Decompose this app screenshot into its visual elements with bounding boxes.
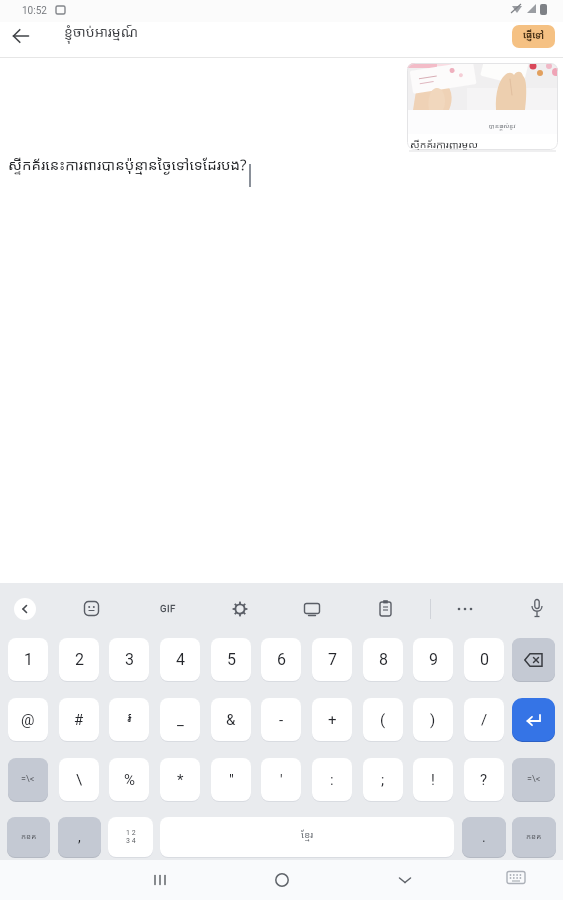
staticText: ស្ទីកគ័រនេះការពារបានប៉ុន្មានថ្ងៃទៅទេដែរប… <box>8 158 247 178</box>
staticText: ស្ទីកគ័រការពារមូល <box>410 140 478 150</box>
button[interactable]: . <box>462 817 506 857</box>
button[interactable] <box>506 870 526 886</box>
button[interactable]: % <box>109 758 149 801</box>
staticText: ខ្មែរ <box>301 830 314 844</box>
staticText: ; <box>381 771 385 789</box>
button[interactable]: , <box>58 817 101 857</box>
staticText: កខគ <box>526 832 542 843</box>
button[interactable]: 6 <box>261 638 301 681</box>
staticText: 5 <box>227 650 236 669</box>
button[interactable]: =\< <box>8 758 48 801</box>
staticText: 1 2 3 4 <box>126 829 136 845</box>
button[interactable] <box>270 868 294 892</box>
staticText: - <box>279 711 284 729</box>
button[interactable] <box>6 26 34 54</box>
button[interactable]: " <box>211 758 251 801</box>
button[interactable]: 9 <box>413 638 453 681</box>
button[interactable]: 8 <box>363 638 403 681</box>
staticText: @ <box>21 711 35 729</box>
staticText: ៛ <box>127 710 132 730</box>
staticText: 0 <box>480 650 489 669</box>
staticText: បានផ្ដល់នូវ <box>489 123 516 132</box>
staticText: % <box>124 771 135 789</box>
staticText: . <box>482 829 486 845</box>
button[interactable] <box>83 600 101 618</box>
staticText: GIF <box>160 603 176 614</box>
staticText: & <box>226 711 236 729</box>
button[interactable]: បានផ្ដល់នូវ <box>407 63 558 150</box>
button[interactable]: : <box>312 758 352 801</box>
button[interactable]: _ <box>160 698 200 741</box>
staticText: ? <box>480 771 488 789</box>
staticText: កខគ <box>21 832 37 843</box>
button[interactable] <box>393 868 417 892</box>
staticText: 8 <box>379 650 388 669</box>
staticText: 6 <box>277 650 286 669</box>
button[interactable]: កខគ <box>512 817 556 857</box>
staticText: + <box>328 711 337 729</box>
staticText: 2 <box>75 650 84 669</box>
button[interactable]: 5 <box>211 638 251 681</box>
button[interactable] <box>512 698 555 741</box>
button[interactable]: - <box>261 698 301 741</box>
button[interactable]: 7 <box>312 638 352 681</box>
button[interactable]: ? <box>464 758 504 801</box>
button[interactable]: ខ្មែរ <box>160 817 454 857</box>
staticText: 10:52 <box>22 5 47 17</box>
button[interactable] <box>231 600 249 618</box>
staticText: \ <box>76 771 83 789</box>
staticText: 4 <box>176 650 185 669</box>
button[interactable]: & <box>211 698 251 741</box>
button[interactable]: GIF <box>160 603 176 614</box>
button[interactable] <box>529 598 545 620</box>
button[interactable] <box>148 868 172 892</box>
button[interactable]: 3 <box>109 638 149 681</box>
button[interactable] <box>14 598 36 620</box>
staticText: 3 <box>125 650 134 669</box>
staticText: , <box>78 829 81 845</box>
staticText: / <box>481 711 488 729</box>
button[interactable]: ; <box>363 758 403 801</box>
button[interactable]: 2 <box>59 638 99 681</box>
button[interactable]: 1 <box>8 638 48 681</box>
button[interactable]: ( <box>363 698 403 741</box>
staticText: : <box>330 771 334 789</box>
staticText: ' <box>280 771 283 789</box>
button[interactable]: / <box>464 698 504 741</box>
staticText: _ <box>177 711 184 729</box>
staticText: # <box>74 711 84 729</box>
button[interactable]: @ <box>8 698 48 741</box>
button[interactable] <box>303 601 321 619</box>
staticText: 1 <box>24 650 33 669</box>
button[interactable]: =\< <box>512 758 555 801</box>
button[interactable]: កខគ <box>7 817 50 857</box>
button[interactable]: 0 <box>464 638 504 681</box>
button[interactable]: ផ្ញើទៅ <box>512 25 555 48</box>
staticText: 9 <box>429 650 438 669</box>
button[interactable] <box>378 599 394 618</box>
staticText: 7 <box>328 650 337 669</box>
button[interactable] <box>455 600 475 618</box>
staticText: ) <box>430 711 436 729</box>
staticText: " <box>229 771 234 789</box>
staticText: ខ្ញុំចាប់អារម្មណ៍ <box>64 25 139 44</box>
button[interactable]: ) <box>413 698 453 741</box>
button[interactable]: 1 2 3 4 <box>108 817 153 857</box>
staticText: =\< <box>527 774 541 785</box>
button[interactable]: ៛ <box>109 698 149 741</box>
button[interactable] <box>512 638 555 681</box>
staticText: =\< <box>21 774 35 785</box>
button[interactable]: ' <box>261 758 301 801</box>
staticText: ( <box>380 711 386 729</box>
button[interactable]: ! <box>413 758 453 801</box>
staticText: ! <box>431 771 435 789</box>
button[interactable]: * <box>160 758 200 801</box>
staticText: * <box>177 771 184 789</box>
staticText: ផ្ញើទៅ <box>523 30 545 44</box>
button[interactable]: + <box>312 698 352 741</box>
button[interactable]: \ <box>59 758 99 801</box>
button[interactable]: 4 <box>160 638 200 681</box>
button[interactable]: # <box>59 698 99 741</box>
